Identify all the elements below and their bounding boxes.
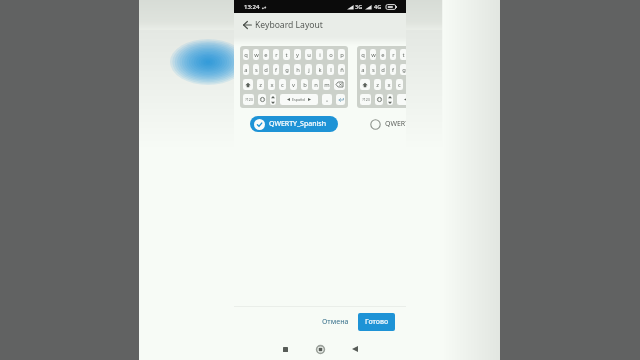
staticText: l — [330, 66, 332, 74]
button[interactable]: Home — [311, 340, 329, 358]
button[interactable]: Отмена — [313, 314, 350, 330]
staticText: g — [402, 66, 406, 74]
staticText: w — [371, 51, 376, 59]
staticText: d — [381, 66, 385, 74]
staticText: v — [292, 81, 295, 89]
staticText: m — [324, 81, 330, 89]
staticText: t — [402, 51, 405, 59]
staticText: b — [303, 81, 307, 89]
staticText: c — [281, 81, 284, 89]
staticText: w — [254, 51, 259, 59]
staticText: c — [398, 81, 401, 89]
staticText: g — [285, 66, 289, 74]
staticText: p — [340, 51, 344, 59]
button[interactable]: Back — [346, 340, 364, 358]
staticText: k — [318, 66, 322, 74]
staticText: q — [244, 51, 248, 59]
staticText: 13:24 — [244, 3, 260, 11]
staticText: t — [285, 51, 288, 59]
button[interactable]: QWERTY_Spanish — [250, 116, 338, 132]
staticText: ñ — [340, 66, 344, 74]
staticText: QWERTY_Spanish — [269, 119, 327, 129]
staticText: Español — [292, 97, 306, 102]
staticText: Готово — [365, 317, 389, 327]
staticText: s — [372, 66, 375, 74]
staticText: Отмена — [322, 317, 349, 327]
staticText: r — [392, 51, 395, 59]
staticText: ?123 — [362, 97, 370, 102]
staticText: z — [376, 81, 379, 89]
button[interactable]: Recents — [276, 340, 294, 358]
staticText: q — [361, 51, 365, 59]
staticText: a — [244, 66, 248, 74]
staticText: 4G — [374, 3, 382, 10]
staticText: s — [255, 66, 258, 74]
staticText: h — [296, 66, 300, 74]
button[interactable]: Keyboard layout preview — [240, 46, 348, 108]
button[interactable]: QWERTY_Russian — [367, 116, 406, 132]
button[interactable]: Keyboard layout preview — [357, 46, 406, 108]
button[interactable]: Готово — [358, 313, 395, 331]
staticText: o — [329, 51, 333, 59]
staticText: y — [296, 51, 299, 59]
staticText: j — [308, 66, 310, 74]
staticText: d — [264, 66, 268, 74]
staticText: i — [319, 51, 321, 59]
staticText: Keyboard Layout — [255, 19, 323, 31]
staticText: u — [307, 51, 311, 59]
staticText: n — [314, 81, 318, 89]
button[interactable]: Back — [237, 15, 257, 35]
staticText: a — [361, 66, 365, 74]
staticText: e — [381, 51, 385, 59]
staticText: x — [270, 81, 274, 89]
staticText: 3G — [355, 3, 363, 10]
staticText: e — [264, 51, 268, 59]
staticText: r — [275, 51, 278, 59]
staticText: f — [392, 66, 394, 74]
staticText: x — [387, 81, 391, 89]
staticText: z — [259, 81, 262, 89]
staticText: QWERTY_Russian — [385, 119, 406, 129]
staticText: f — [275, 66, 277, 74]
staticText: ?123 — [245, 97, 253, 102]
